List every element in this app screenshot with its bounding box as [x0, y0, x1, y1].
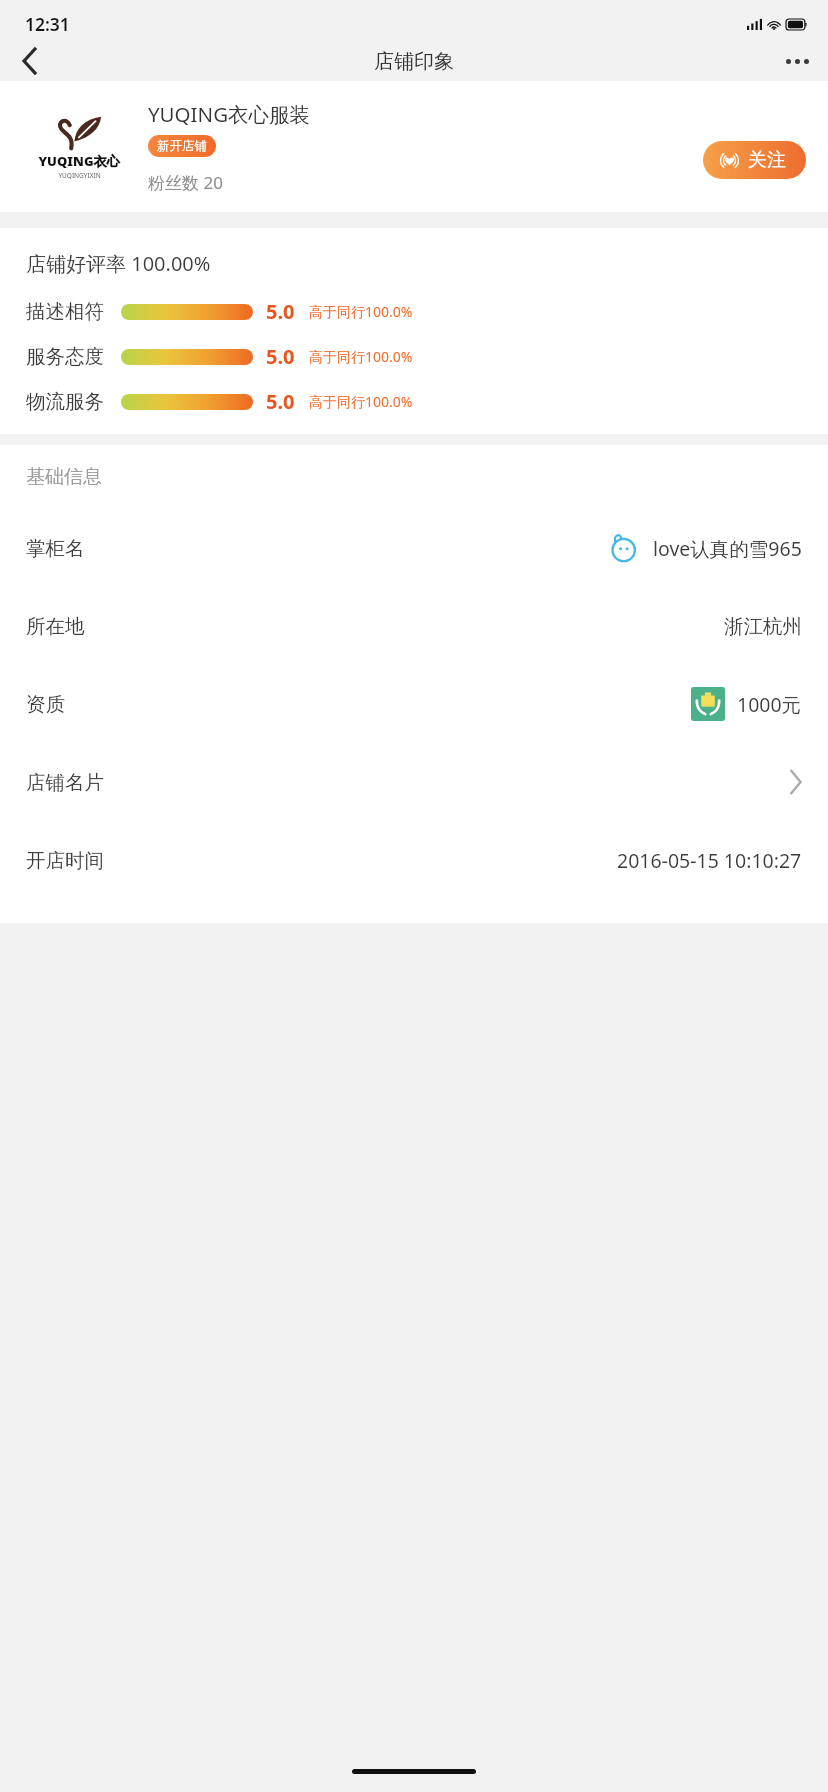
staticText: 掌柜名 [26, 536, 85, 561]
staticText: 5.0 [266, 388, 295, 415]
button[interactable]: 描述相符 [26, 298, 802, 325]
staticText: 资质 [26, 692, 65, 717]
staticText: 服务态度 [26, 344, 104, 369]
staticText: love认真的雪965 [653, 535, 802, 562]
staticText: YUQING衣心服装 [148, 100, 311, 128]
button[interactable]: 开店时间 [0, 821, 828, 899]
staticText: 开店时间 [26, 848, 104, 873]
staticText: 高于同行100.0% [309, 302, 413, 321]
staticText: YUQING衣心 [38, 152, 120, 170]
staticText: 5.0 [266, 298, 295, 325]
button[interactable]: More options [774, 41, 820, 81]
staticText: 粉丝数 20 [148, 171, 223, 194]
staticText: 店铺印象 [374, 49, 454, 74]
staticText: YUQINGYIXIN [58, 171, 101, 180]
button[interactable]: 服务态度 [26, 343, 802, 370]
staticText: 物流服务 [26, 389, 104, 414]
button[interactable]: 物流服务 [26, 388, 802, 415]
button[interactable]: 掌柜名 [0, 509, 828, 587]
button[interactable]: 所在地 [0, 587, 828, 665]
staticText: 描述相符 [26, 299, 104, 324]
staticText: 2016-05-15 10:10:27 [617, 847, 802, 874]
staticText: 浙江杭州 [724, 614, 802, 639]
staticText: 高于同行100.0% [309, 347, 413, 366]
staticText: 新开店铺 [157, 138, 207, 154]
staticText: 关注 [748, 148, 786, 172]
button[interactable]: Shop logo [26, 99, 132, 195]
staticText: 5.0 [266, 343, 295, 370]
staticText: 所在地 [26, 614, 85, 639]
button[interactable]: 新开店铺 [157, 138, 207, 154]
staticText: 基础信息 [26, 465, 102, 489]
button[interactable]: 店铺名片 [0, 743, 828, 821]
button[interactable]: 关注 [703, 141, 806, 179]
staticText: 12:31 [25, 12, 70, 36]
staticText: 1000元 [737, 691, 802, 718]
staticText: 店铺好评率 100.00% [26, 250, 211, 277]
staticText: 店铺名片 [26, 770, 104, 795]
button[interactable]: Back [6, 41, 52, 81]
staticText: 高于同行100.0% [309, 392, 413, 411]
button[interactable]: 资质 [0, 665, 828, 743]
